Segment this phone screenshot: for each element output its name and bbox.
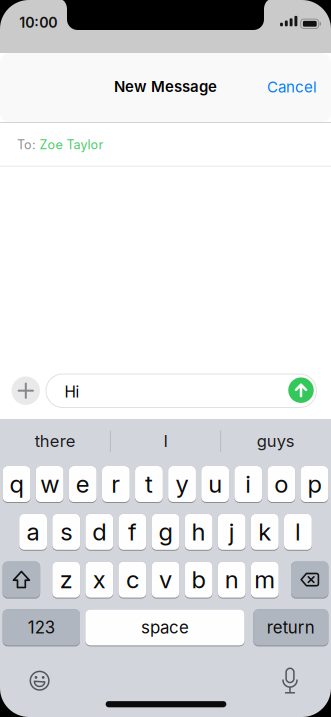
staticText: x — [93, 565, 106, 594]
staticText: I — [163, 431, 167, 451]
staticText: New Message — [114, 78, 217, 96]
staticText: a — [27, 517, 40, 546]
button[interactable]: i — [234, 466, 262, 503]
button[interactable]: space — [85, 609, 245, 646]
button[interactable]: s — [52, 514, 80, 551]
button[interactable]: e — [69, 466, 97, 503]
staticText: y — [175, 469, 188, 498]
staticText: i — [245, 469, 251, 498]
button[interactable]: w — [36, 466, 63, 503]
staticText: r — [111, 469, 120, 498]
button[interactable]: l — [284, 514, 312, 551]
button[interactable]: d — [85, 514, 113, 551]
button[interactable]: t — [135, 466, 163, 503]
staticText: w — [40, 469, 59, 498]
button[interactable]: Delete — [291, 562, 328, 599]
staticText: z — [60, 565, 73, 594]
staticText: l — [295, 517, 301, 546]
staticText: return — [267, 617, 315, 637]
staticText: 10:00 — [19, 14, 57, 31]
button[interactable]: k — [251, 514, 279, 551]
button[interactable]: Emoji — [26, 667, 54, 695]
staticText: v — [159, 565, 172, 594]
staticText: b — [192, 565, 206, 594]
button[interactable]: h — [185, 514, 212, 551]
button[interactable]: m — [251, 562, 279, 599]
staticText: j — [229, 517, 235, 546]
button[interactable]: Hi — [46, 374, 316, 407]
staticText: d — [92, 517, 106, 546]
staticText: 123 — [28, 617, 55, 637]
button[interactable]: p — [301, 466, 328, 503]
button[interactable]: o — [267, 466, 295, 503]
button[interactable]: Attach — [12, 376, 40, 405]
button[interactable]: To: — [0, 123, 331, 166]
staticText: guys — [257, 431, 295, 451]
staticText: space — [141, 617, 189, 637]
button[interactable]: u — [201, 466, 229, 503]
button[interactable]: guys — [226, 420, 326, 462]
staticText: Cancel — [267, 78, 317, 96]
staticText: g — [158, 517, 172, 546]
staticText: Hi — [64, 383, 79, 401]
staticText: there — [35, 431, 76, 451]
button[interactable]: Shift — [3, 562, 40, 599]
staticText: c — [126, 565, 139, 594]
button[interactable]: return — [253, 609, 328, 646]
button[interactable]: I — [115, 420, 215, 462]
staticText: To: — [17, 137, 36, 152]
staticText: k — [258, 517, 271, 546]
button[interactable]: x — [85, 562, 113, 599]
button[interactable]: g — [152, 514, 179, 551]
button[interactable]: q — [3, 466, 30, 503]
button[interactable]: 123 — [3, 609, 80, 646]
button[interactable]: b — [185, 562, 212, 599]
staticText: e — [76, 469, 90, 498]
button[interactable]: n — [218, 562, 246, 599]
button[interactable]: r — [102, 466, 130, 503]
button[interactable]: y — [168, 466, 196, 503]
button[interactable]: Dictation — [276, 667, 304, 695]
button[interactable]: f — [118, 514, 146, 551]
button[interactable]: Send — [288, 377, 314, 403]
staticText: s — [60, 517, 72, 546]
button[interactable]: v — [152, 562, 179, 599]
staticText: h — [192, 517, 206, 546]
button[interactable]: a — [19, 514, 47, 551]
button[interactable]: Cancel — [267, 78, 317, 96]
button[interactable]: there — [5, 420, 105, 462]
staticText: u — [208, 469, 222, 498]
staticText: p — [307, 469, 321, 498]
staticText: n — [225, 565, 239, 594]
staticText: f — [128, 517, 137, 546]
button[interactable]: z — [52, 562, 80, 599]
staticText: Zoe Taylor — [39, 137, 103, 152]
staticText: q — [9, 469, 23, 498]
staticText: t — [145, 469, 153, 498]
staticText: o — [274, 469, 288, 498]
button[interactable]: c — [118, 562, 146, 599]
button[interactable]: j — [218, 514, 246, 551]
staticText: m — [254, 565, 275, 594]
